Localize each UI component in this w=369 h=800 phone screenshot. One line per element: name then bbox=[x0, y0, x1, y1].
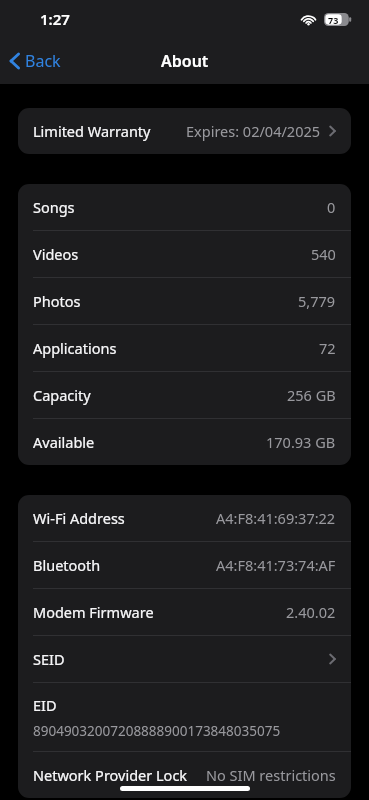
staticText: About bbox=[161, 50, 209, 72]
staticText: Photos bbox=[33, 291, 81, 311]
button[interactable]: Available bbox=[18, 419, 351, 465]
staticText: Wi-Fi Address bbox=[33, 508, 125, 528]
button[interactable]: EID bbox=[18, 683, 351, 751]
button[interactable]: Songs bbox=[18, 184, 351, 230]
button[interactable]: Back bbox=[0, 42, 73, 80]
staticText: 0 bbox=[327, 197, 336, 217]
staticText: 72 bbox=[319, 338, 336, 358]
staticText: Capacity bbox=[33, 385, 91, 405]
staticText: Back bbox=[25, 50, 61, 72]
staticText: 1:27 bbox=[40, 9, 70, 29]
other: Open details bbox=[329, 653, 336, 665]
staticText: 2.40.02 bbox=[286, 602, 336, 622]
staticText: 256 GB bbox=[287, 385, 336, 405]
staticText: Videos bbox=[33, 244, 79, 264]
staticText: 5,779 bbox=[298, 291, 336, 311]
staticText: A4:F8:41:69:37:22 bbox=[216, 508, 336, 528]
button[interactable]: SEID bbox=[18, 636, 351, 682]
staticText: No SIM restrictions bbox=[206, 765, 336, 785]
staticText: 540 bbox=[311, 244, 336, 264]
button[interactable]: Capacity bbox=[18, 372, 351, 418]
button[interactable]: Network Provider Lock bbox=[18, 752, 351, 798]
staticText: Limited Warranty bbox=[33, 121, 151, 141]
staticText: Network Provider Lock bbox=[33, 765, 188, 785]
staticText: Bluetooth bbox=[33, 555, 101, 575]
staticText: Applications bbox=[33, 338, 117, 358]
button[interactable]: Applications bbox=[18, 325, 351, 371]
staticText: Songs bbox=[33, 197, 75, 217]
staticText: Expires: 02/04/2025 bbox=[186, 121, 321, 141]
button[interactable]: Bluetooth bbox=[18, 542, 351, 588]
button[interactable]: Modem Firmware bbox=[18, 589, 351, 635]
staticText: SEID bbox=[33, 649, 65, 669]
staticText: Modem Firmware bbox=[33, 602, 154, 622]
other: Open details bbox=[329, 125, 336, 137]
staticText: 170.93 GB bbox=[266, 432, 336, 452]
staticText: A4:F8:41:73:74:AF bbox=[216, 555, 336, 575]
button[interactable]: Videos bbox=[18, 231, 351, 277]
staticText: 73 bbox=[328, 14, 339, 26]
staticText: Available bbox=[33, 432, 95, 452]
staticText: 89049032007208888900173848035075 bbox=[33, 722, 281, 740]
button[interactable]: Wi-Fi Address bbox=[18, 495, 351, 541]
button[interactable]: Limited Warranty bbox=[18, 108, 351, 154]
button[interactable]: Photos bbox=[18, 278, 351, 324]
staticText: EID bbox=[33, 695, 57, 715]
